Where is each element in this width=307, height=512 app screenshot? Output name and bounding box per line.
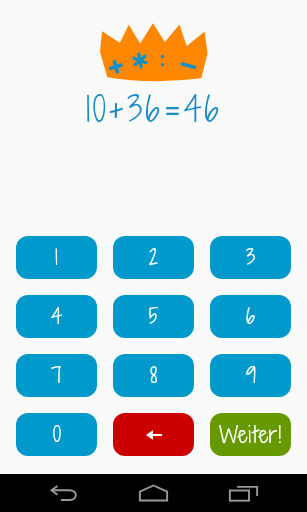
staticText: 9 bbox=[246, 361, 256, 390]
staticText: 10+36=46 bbox=[0, 85, 307, 133]
staticText: Weiter! bbox=[219, 420, 282, 450]
button[interactable]: Weiter! bbox=[210, 413, 291, 456]
button[interactable]: Recent apps bbox=[198, 474, 288, 512]
staticText: 4 bbox=[51, 302, 63, 331]
staticText: 1 bbox=[55, 243, 58, 272]
button[interactable]: 4 bbox=[16, 295, 97, 338]
button[interactable]: 5 bbox=[113, 295, 194, 338]
button[interactable]: Home bbox=[108, 474, 198, 512]
button[interactable]: 0 bbox=[16, 413, 97, 456]
staticText: 0 bbox=[53, 420, 61, 449]
button[interactable]: 7 bbox=[16, 354, 97, 397]
button[interactable]: Back bbox=[19, 474, 108, 512]
button[interactable]: 8 bbox=[113, 354, 194, 397]
staticText: 2 bbox=[149, 243, 158, 272]
staticText: 3 bbox=[246, 243, 256, 272]
button[interactable]: Backspace bbox=[113, 413, 194, 456]
button[interactable]: 2 bbox=[113, 236, 194, 279]
staticText: 8 bbox=[150, 361, 158, 390]
staticText: 7 bbox=[51, 361, 62, 390]
button[interactable]: 3 bbox=[210, 236, 291, 279]
button[interactable]: 9 bbox=[210, 354, 291, 397]
button[interactable]: 1 bbox=[16, 236, 97, 279]
button[interactable]: 6 bbox=[210, 295, 291, 338]
staticText: 5 bbox=[149, 302, 159, 331]
staticText: 6 bbox=[246, 302, 255, 331]
